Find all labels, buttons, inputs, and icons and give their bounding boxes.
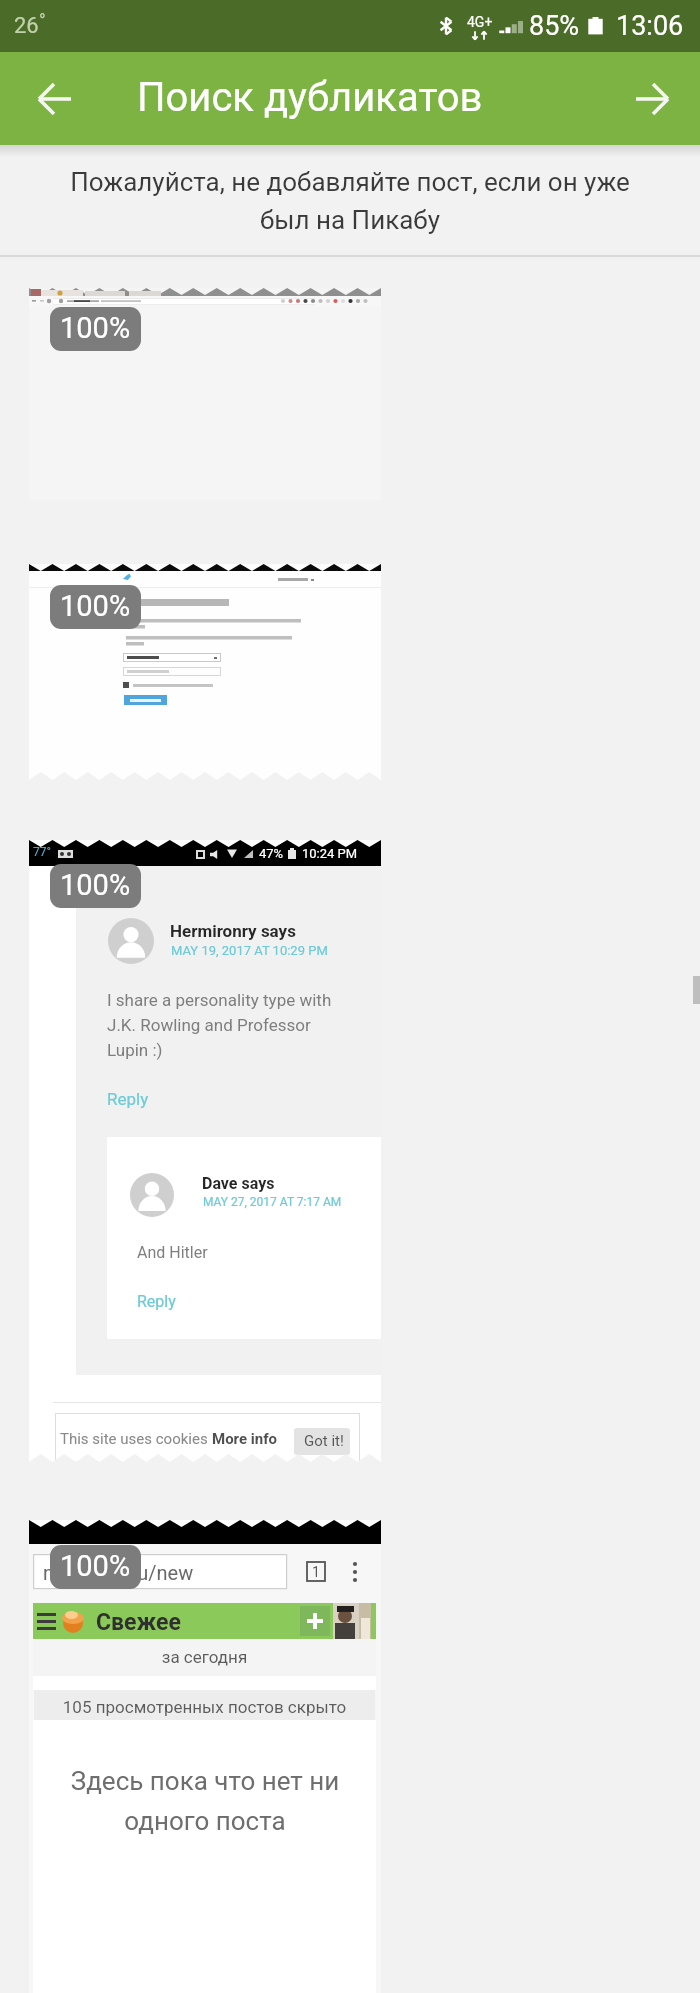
staticText: 100% (60, 311, 131, 345)
button[interactable]: Next (612, 59, 692, 139)
staticText: MAY 19, 2017 AT 10:29 PM (171, 943, 328, 958)
staticText: Reply (107, 1089, 149, 1109)
staticText: Пожалуйста, не добавляйте пост, если он … (70, 167, 630, 235)
button[interactable]: 100% (50, 585, 141, 629)
staticText: Hermironry says (170, 921, 296, 941)
staticText: 100% (60, 589, 131, 623)
staticText: m.pikabu.ru/new (43, 1561, 194, 1584)
staticText: This site uses cookies (60, 1430, 212, 1448)
staticText: And Hitler (137, 1243, 208, 1262)
staticText: Reply (137, 1292, 176, 1311)
staticText: 26 (14, 13, 39, 39)
button[interactable]: Back (15, 59, 95, 139)
staticText: 47% (259, 846, 284, 861)
staticText: 10:24 PM (302, 846, 358, 861)
staticText: 100% (60, 1549, 131, 1583)
staticText: 1 (312, 1564, 320, 1580)
button[interactable]: 100% (50, 307, 141, 351)
button[interactable]: 77° (29, 840, 381, 1462)
staticText: Здесь пока что нет ни одного поста (53, 1766, 357, 1836)
staticText: I share a personality type with J.K. Row… (107, 990, 332, 1060)
staticText: 85% (529, 10, 580, 42)
staticText: за сегодня (33, 1647, 376, 1667)
staticText: Свежее (96, 1609, 181, 1636)
button[interactable]: 100% (29, 288, 381, 500)
staticText: 13:06 (616, 10, 684, 42)
button[interactable]: m.pikabu.ru/new (29, 1520, 381, 1993)
staticText: Dave says (202, 1174, 275, 1193)
button[interactable]: 100% (29, 564, 381, 780)
staticText: MAY 27, 2017 AT 7:17 AM (203, 1195, 342, 1209)
staticText: ° (39, 10, 46, 31)
staticText: Поиск дубликатов (137, 74, 483, 121)
staticText: 77° (33, 845, 51, 859)
staticText: Got it! (304, 1432, 344, 1450)
staticText: 4G+ (467, 14, 493, 30)
staticText: 100% (60, 868, 131, 902)
button[interactable]: 100% (50, 864, 141, 908)
staticText: 105 просмотренных постов скрыто (34, 1697, 375, 1717)
button[interactable]: 100% (50, 1545, 141, 1589)
staticText: More info (212, 1430, 277, 1448)
